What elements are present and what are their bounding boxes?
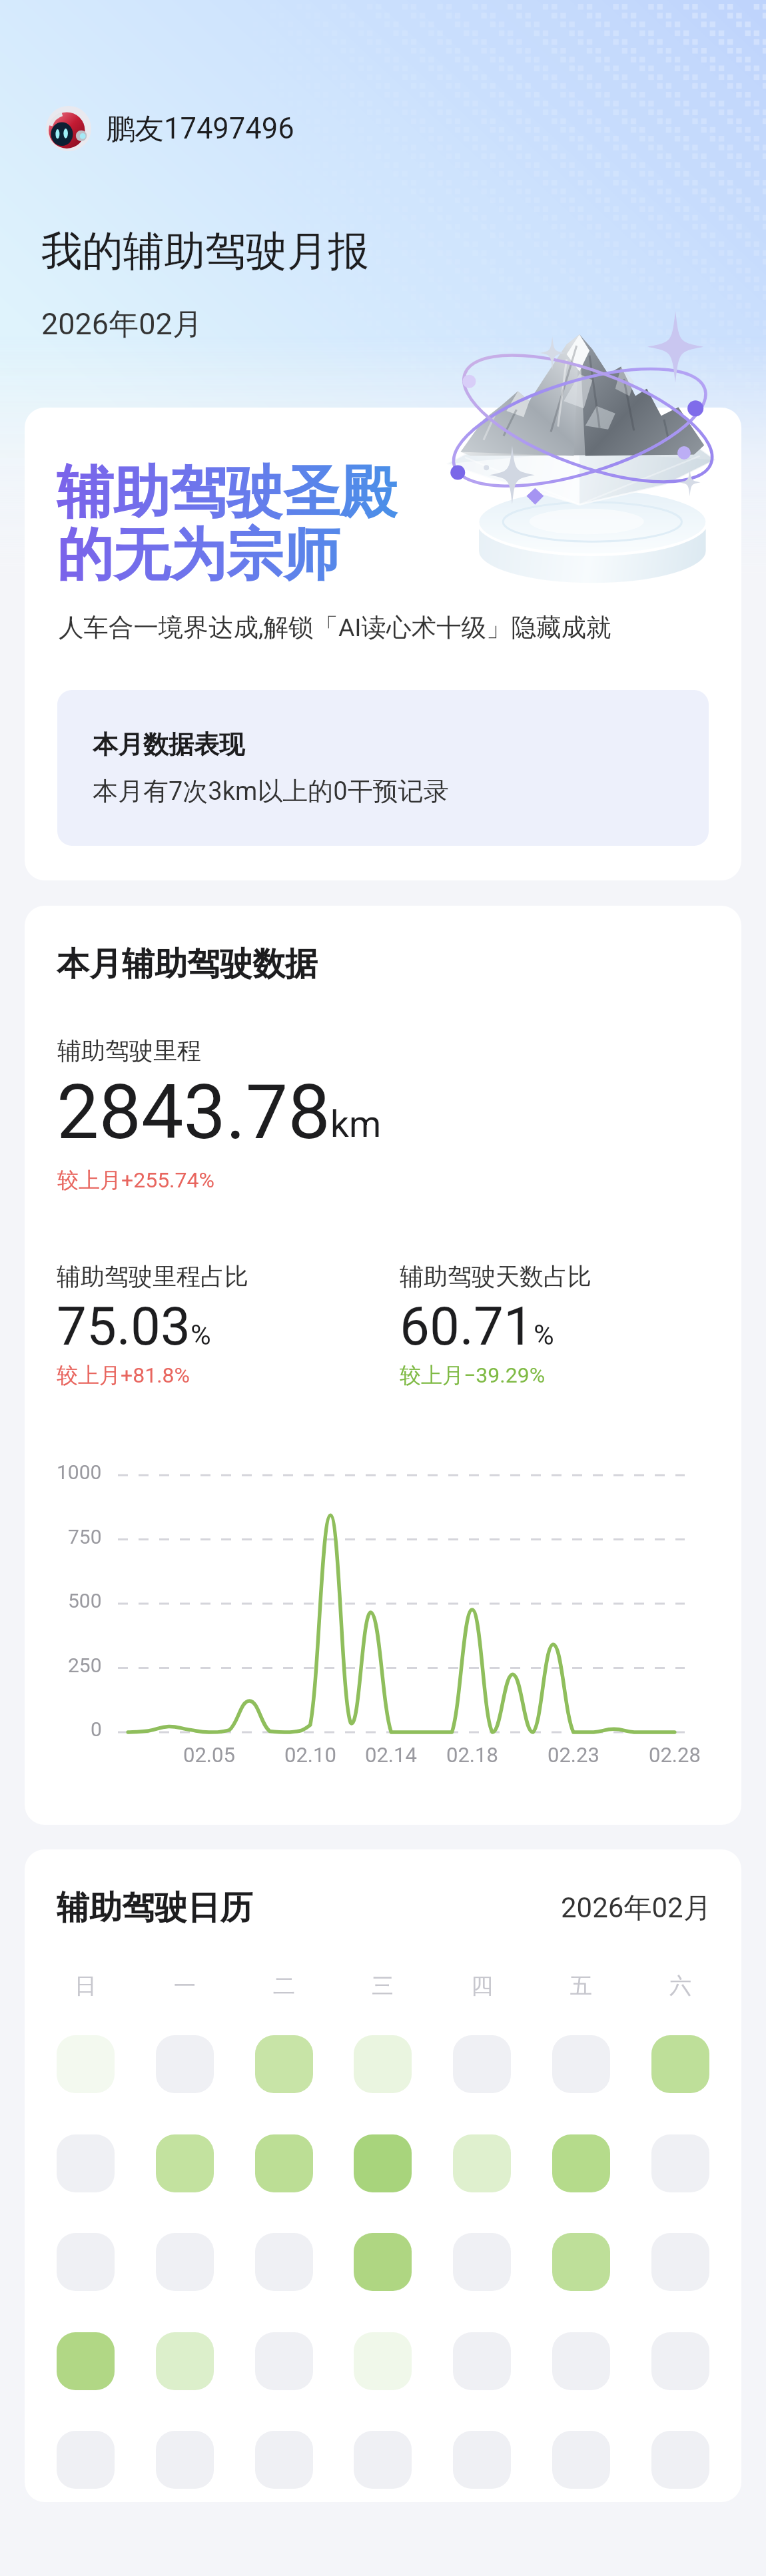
- staticText: 二: [273, 1972, 295, 2000]
- staticText: km: [330, 1103, 382, 1145]
- button[interactable]: [354, 2134, 412, 2192]
- staticText: 本月辅助驾驶数据: [57, 944, 318, 985]
- button[interactable]: [552, 2332, 610, 2390]
- button[interactable]: [156, 2233, 214, 2291]
- staticText: 五: [570, 1972, 592, 2000]
- staticText: 500: [68, 1589, 102, 1612]
- button[interactable]: [453, 2431, 511, 2489]
- staticText: 02.10: [284, 1743, 336, 1767]
- button[interactable]: [552, 2233, 610, 2291]
- staticText: 0: [91, 1718, 102, 1741]
- button[interactable]: [255, 2035, 313, 2093]
- staticText: 本月数据表现: [93, 729, 244, 761]
- staticText: 2026年02月: [41, 306, 202, 344]
- button[interactable]: [453, 2233, 511, 2291]
- button[interactable]: [651, 2233, 709, 2291]
- button[interactable]: [255, 2332, 313, 2390]
- staticText: 人车合一境界达成,解锁「AI读心术十级」隐藏成就: [59, 612, 611, 643]
- staticText: 750: [68, 1525, 102, 1548]
- button[interactable]: [552, 2431, 610, 2489]
- staticText: 75.03: [57, 1295, 191, 1358]
- staticText: 一: [174, 1972, 196, 2000]
- button[interactable]: [453, 2332, 511, 2390]
- button[interactable]: [57, 2431, 115, 2489]
- button[interactable]: [57, 2134, 115, 2192]
- staticText: 02.14: [365, 1743, 417, 1767]
- button[interactable]: [156, 2332, 214, 2390]
- button[interactable]: [354, 2332, 412, 2390]
- button[interactable]: [651, 2431, 709, 2489]
- button[interactable]: [354, 2035, 412, 2093]
- staticText: 辅助驾驶里程占比: [57, 1261, 248, 1291]
- button[interactable]: [651, 2134, 709, 2192]
- button[interactable]: [57, 2332, 115, 2390]
- other: User avatar: [46, 106, 91, 151]
- staticText: 250: [68, 1654, 102, 1677]
- staticText: 较上月+81.8%: [57, 1362, 190, 1389]
- staticText: 2843.78: [57, 1068, 330, 1156]
- staticText: 02.18: [446, 1743, 498, 1767]
- staticText: 02.28: [649, 1743, 701, 1767]
- button[interactable]: [255, 2134, 313, 2192]
- staticText: 本月有7次3km以上的0干预记录: [93, 775, 449, 807]
- button[interactable]: [651, 2332, 709, 2390]
- staticText: 辅助驾驶圣殿: [57, 457, 396, 528]
- staticText: 02.05: [183, 1743, 235, 1767]
- button[interactable]: [57, 2035, 115, 2093]
- staticText: 鹏友17497496: [106, 111, 294, 147]
- button[interactable]: [57, 2233, 115, 2291]
- staticText: 60.71: [400, 1295, 534, 1358]
- staticText: 四: [471, 1972, 493, 2000]
- button[interactable]: [255, 2431, 313, 2489]
- staticText: 我的辅助驾驶月报: [41, 226, 369, 277]
- staticText: 辅助驾驶天数占比: [400, 1261, 591, 1291]
- button[interactable]: [156, 2035, 214, 2093]
- button[interactable]: [354, 2431, 412, 2489]
- staticText: 02.23: [548, 1743, 599, 1767]
- staticText: %: [191, 1319, 211, 1351]
- staticText: 的无为宗师: [57, 519, 340, 591]
- staticText: %: [534, 1319, 554, 1351]
- staticText: 辅助驾驶日历: [57, 1887, 252, 1929]
- button[interactable]: 辅助驾驶圣殿: [25, 408, 741, 880]
- button[interactable]: [453, 2035, 511, 2093]
- staticText: 较上月+255.74%: [57, 1167, 214, 1193]
- staticText: 辅助驾驶里程: [57, 1036, 201, 1066]
- button[interactable]: [255, 2233, 313, 2291]
- staticText: 较上月−39.29%: [400, 1362, 546, 1389]
- button[interactable]: User avatar: [46, 106, 294, 151]
- button[interactable]: [552, 2035, 610, 2093]
- staticText: 六: [669, 1972, 691, 2000]
- button[interactable]: [552, 2134, 610, 2192]
- button[interactable]: [651, 2035, 709, 2093]
- staticText: 1000: [57, 1460, 102, 1484]
- button[interactable]: [156, 2134, 214, 2192]
- staticText: 日: [75, 1972, 97, 2000]
- button[interactable]: [453, 2134, 511, 2192]
- staticText: 三: [372, 1972, 394, 2000]
- staticText: 2026年02月: [561, 1891, 711, 1926]
- button[interactable]: [156, 2431, 214, 2489]
- button[interactable]: [354, 2233, 412, 2291]
